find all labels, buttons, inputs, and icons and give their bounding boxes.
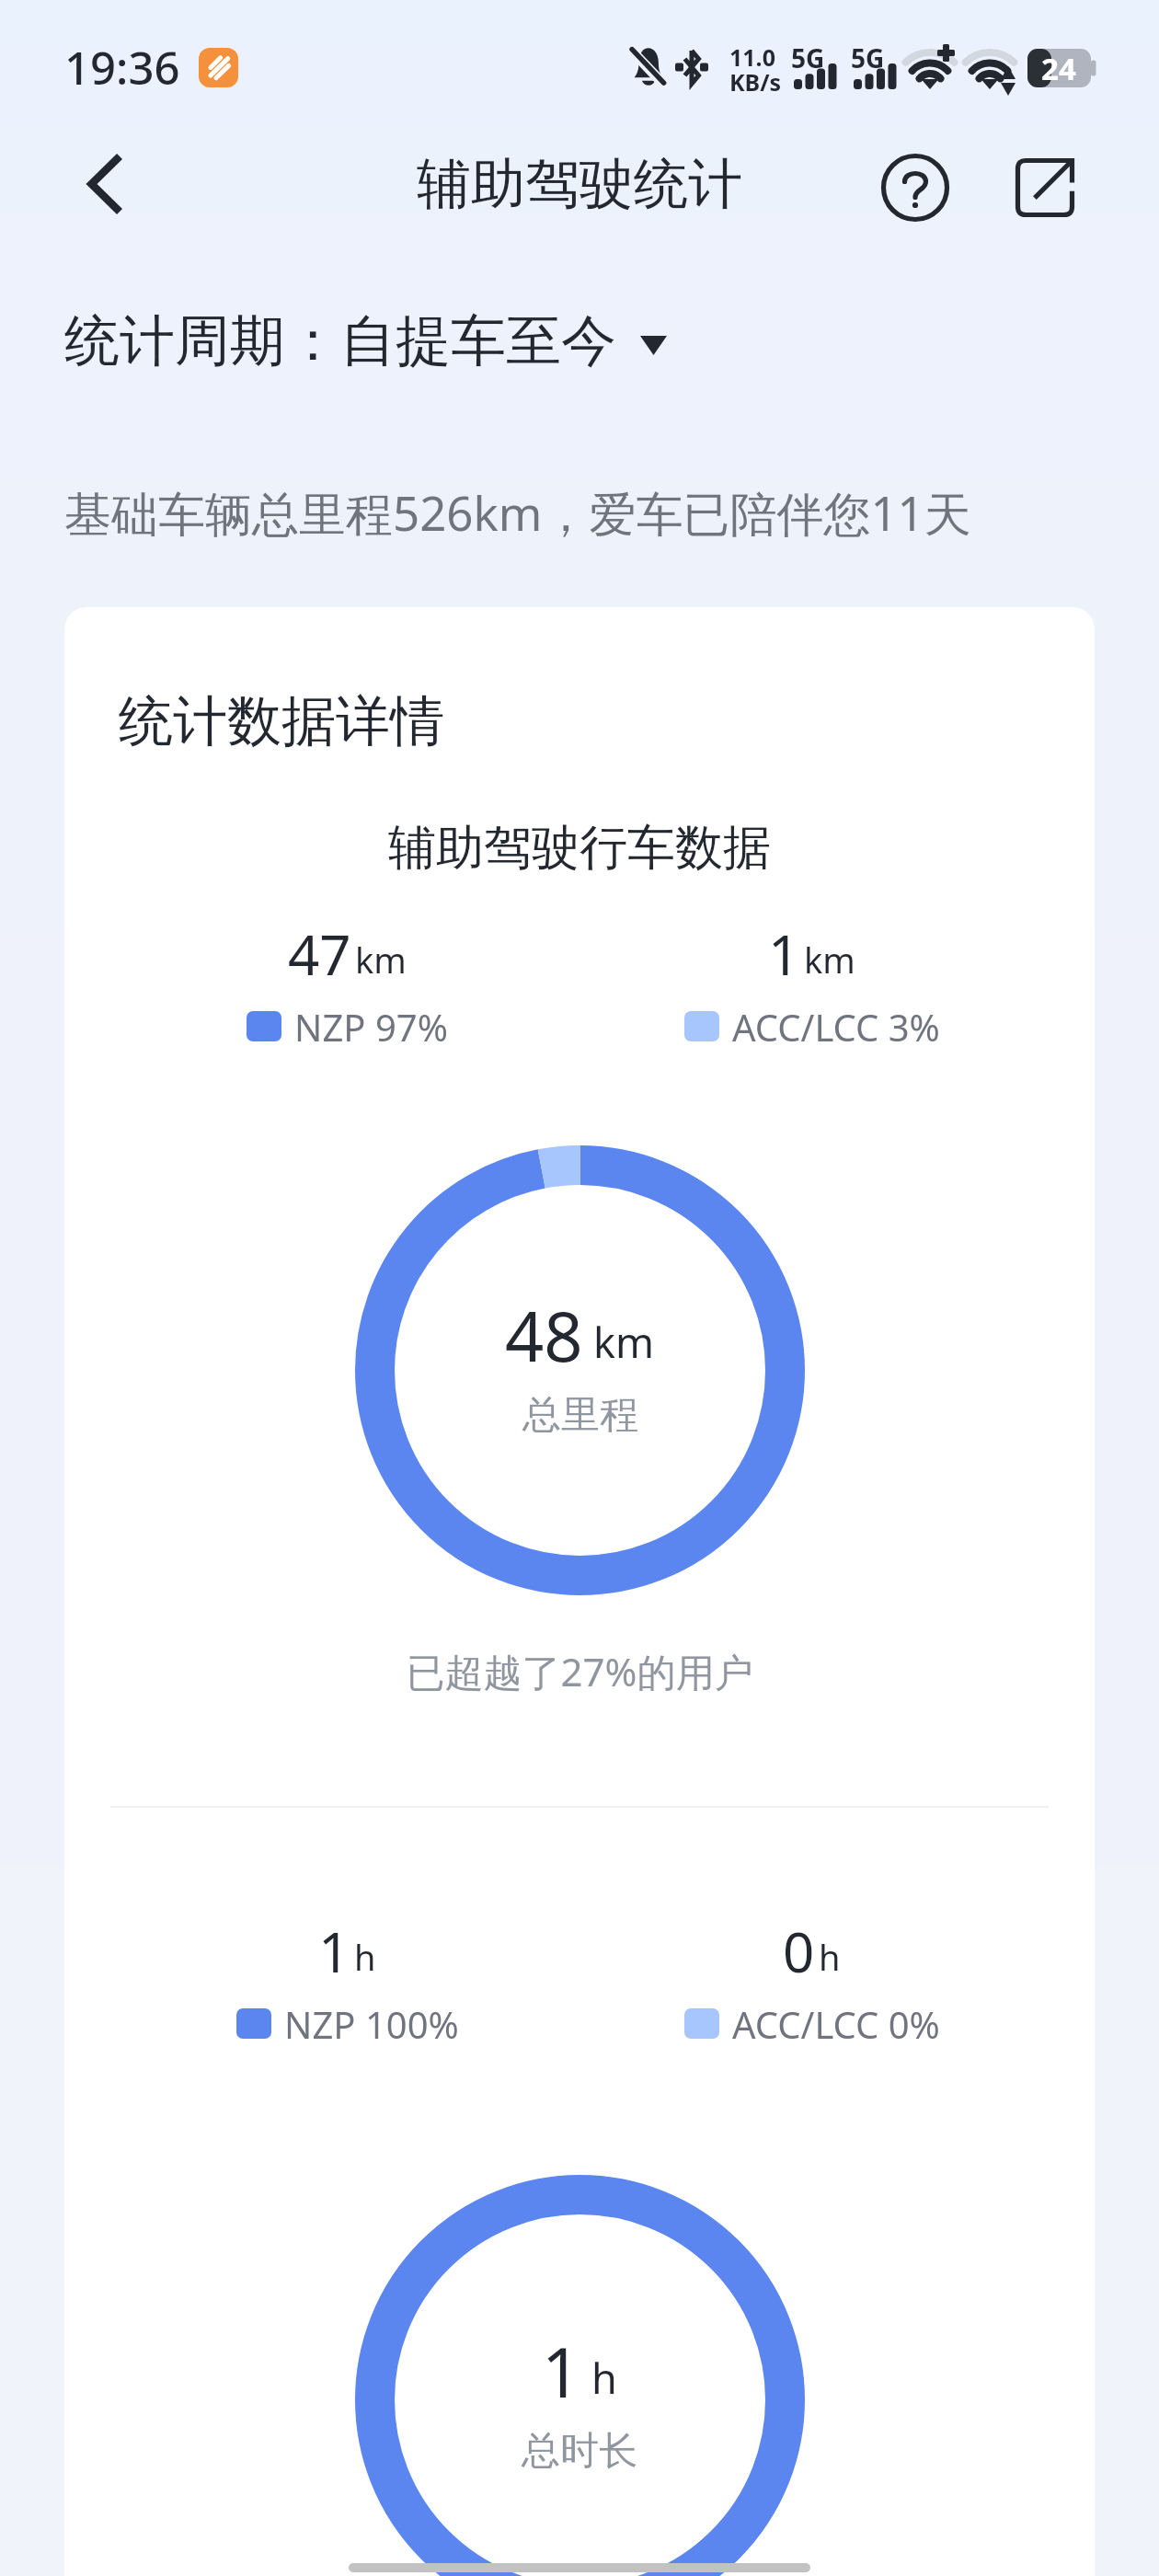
staticText: NZP 100% — [284, 1999, 459, 2049]
button[interactable]: Help — [877, 154, 954, 222]
staticText: 5G — [851, 40, 885, 75]
staticText: 24 — [1041, 48, 1076, 89]
staticText: 已超越了27%的用户 — [64, 1645, 1095, 1697]
staticText: 总里程 — [522, 1391, 638, 1440]
staticText: km — [593, 1314, 655, 1370]
staticText: 19:36 — [64, 37, 180, 98]
staticText: km — [355, 936, 407, 983]
staticText: 1 — [542, 2325, 581, 2418]
staticText: 0 — [783, 1914, 815, 1989]
staticText: km — [804, 936, 855, 983]
staticText: 5G — [791, 40, 825, 75]
staticText: 统计数据详情 — [119, 687, 444, 755]
staticText: 47 — [288, 916, 351, 992]
button[interactable]: Share — [1006, 154, 1084, 222]
staticText: 基础车辆总里程526km，爱车已陪伴您11天 — [64, 480, 971, 545]
staticText: KB/s — [729, 66, 782, 98]
staticText: 48 — [505, 1289, 583, 1382]
staticText: 1 — [768, 916, 800, 992]
staticText: 总时长 — [522, 2427, 637, 2476]
staticText: 11.0 — [729, 41, 775, 73]
staticText: NZP 97% — [294, 1002, 448, 1052]
button[interactable]: 统计周期：自提车至今 — [0, 306, 1159, 376]
staticText: ACC/LCC 0% — [732, 1999, 940, 2049]
staticText: h — [591, 2350, 617, 2406]
button[interactable]: Back — [55, 150, 134, 218]
staticText: 辅助驾驶统计 — [417, 150, 742, 218]
staticText: 1 — [318, 1914, 350, 1989]
staticText: 辅助驾驶行车数据 — [64, 818, 1095, 879]
staticText: h — [354, 1933, 376, 1981]
staticText: ACC/LCC 3% — [732, 1002, 940, 1052]
staticText: h — [819, 1933, 841, 1981]
staticText: 统计周期：自提车至今 — [64, 306, 616, 376]
